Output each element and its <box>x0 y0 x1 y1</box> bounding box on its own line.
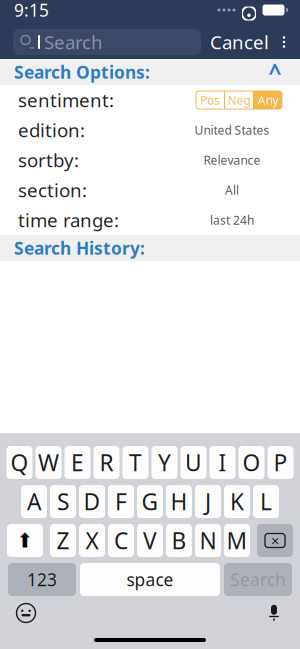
button[interactable]: R <box>93 446 119 479</box>
staticText: W <box>38 447 59 477</box>
button[interactable]: E <box>64 446 90 479</box>
button[interactable]: Cancel <box>208 29 271 55</box>
button[interactable]: Pos <box>196 91 224 109</box>
staticText: 123 <box>27 568 57 591</box>
staticText: G <box>141 486 158 516</box>
staticText: Z <box>56 525 69 555</box>
button[interactable]: More options <box>278 29 290 55</box>
staticText: T <box>129 447 142 477</box>
staticText: L <box>260 486 272 516</box>
button[interactable]: Emoji keyboard <box>10 598 42 628</box>
button[interactable]: U <box>180 446 206 479</box>
staticText: Neg <box>227 92 250 108</box>
button[interactable]: Any <box>254 91 282 109</box>
staticText: P <box>273 447 287 477</box>
staticText: sentiment: <box>18 88 114 112</box>
staticText: sortby: <box>18 148 79 172</box>
button[interactable]: Search <box>224 563 292 596</box>
button[interactable]: Neg <box>225 91 253 109</box>
staticText: Q <box>10 447 28 477</box>
staticText: Relevance <box>203 152 260 168</box>
staticText: Search <box>230 568 286 591</box>
staticText: D <box>83 486 100 516</box>
staticText: Search Options: <box>14 60 150 83</box>
staticText: Search <box>44 30 103 54</box>
button[interactable]: K <box>224 485 250 518</box>
button[interactable]: space <box>80 563 220 596</box>
staticText: last 24h <box>210 212 254 228</box>
staticText: V <box>143 525 157 555</box>
staticText: N <box>199 525 216 555</box>
staticText: I <box>218 447 226 477</box>
button[interactable]: X <box>79 524 105 557</box>
button[interactable]: M <box>224 524 250 557</box>
staticText: X <box>85 525 98 555</box>
staticText: M <box>226 525 247 555</box>
button[interactable]: A <box>21 485 47 518</box>
staticText: × <box>271 531 279 550</box>
button[interactable]: H <box>166 485 192 518</box>
button[interactable]: Shift <box>7 524 43 557</box>
staticText: B <box>171 525 186 555</box>
staticText: U <box>185 447 202 477</box>
button[interactable]: Y <box>151 446 177 479</box>
button[interactable]: edition: <box>0 115 300 145</box>
staticText: Y <box>158 447 171 477</box>
button[interactable]: sentiment: <box>0 85 300 115</box>
staticText: C <box>114 525 128 555</box>
staticText: 9:15 <box>14 0 49 21</box>
button[interactable]: N <box>195 524 221 557</box>
staticText: Search History: <box>14 236 145 259</box>
staticText: ⬆ <box>16 529 33 552</box>
staticText: All <box>225 182 239 198</box>
staticText: time range: <box>18 208 119 232</box>
staticText: H <box>170 486 187 516</box>
staticText: F <box>115 486 127 516</box>
button[interactable]: P <box>267 446 293 479</box>
button[interactable]: time range: <box>0 205 300 235</box>
staticText: Any <box>257 92 278 108</box>
staticText: J <box>205 486 211 516</box>
button[interactable]: W <box>35 446 61 479</box>
staticText: edition: <box>18 118 85 142</box>
button[interactable]: I <box>209 446 235 479</box>
button[interactable]: G <box>137 485 163 518</box>
staticText: S <box>57 486 69 516</box>
staticText: ^ <box>268 57 281 87</box>
button[interactable]: B <box>166 524 192 557</box>
button[interactable]: O <box>238 446 264 479</box>
button[interactable]: Dictation <box>258 598 290 628</box>
staticText: K <box>230 486 244 516</box>
button[interactable]: Q <box>6 446 32 479</box>
button[interactable]: L <box>253 485 279 518</box>
button[interactable]: Search Options: <box>0 59 300 85</box>
button[interactable]: D <box>79 485 105 518</box>
button[interactable]: T <box>122 446 148 479</box>
staticText: O <box>242 447 260 477</box>
button[interactable]: Z <box>50 524 76 557</box>
staticText: E <box>71 447 84 477</box>
staticText: Pos <box>200 92 220 108</box>
button[interactable]: F <box>108 485 134 518</box>
button[interactable]: C <box>108 524 134 557</box>
button[interactable]: S <box>50 485 76 518</box>
button[interactable]: sortby: <box>0 145 300 175</box>
button[interactable]: J <box>195 485 221 518</box>
button[interactable]: Delete <box>257 524 293 557</box>
button[interactable]: 123 <box>8 563 76 596</box>
staticText: Cancel <box>210 30 269 54</box>
button[interactable]: V <box>137 524 163 557</box>
staticText: section: <box>18 178 87 202</box>
staticText: United States <box>194 122 269 138</box>
staticText: R <box>99 447 113 477</box>
staticText: A <box>27 486 41 516</box>
staticText: space <box>126 568 173 591</box>
button[interactable]: section: <box>0 175 300 205</box>
